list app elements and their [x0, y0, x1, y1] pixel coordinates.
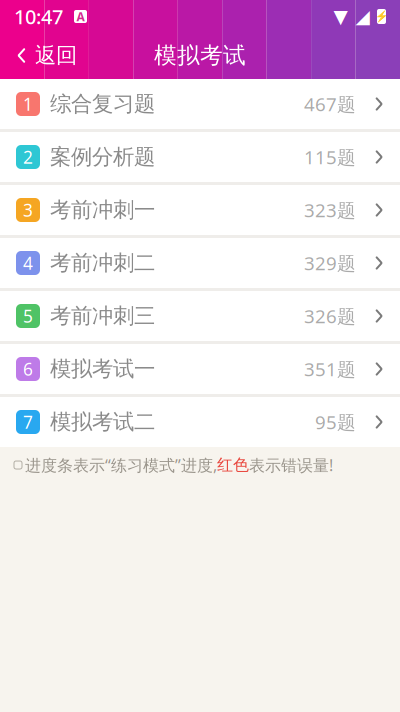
staticText: 模拟考试二	[50, 409, 155, 435]
staticText: 329题	[304, 251, 356, 275]
staticText: 115题	[304, 145, 356, 169]
staticText: 2	[23, 145, 33, 168]
button[interactable]: 6	[0, 344, 400, 394]
staticText: 表示错误量!	[249, 454, 333, 476]
staticText: 95题	[315, 410, 356, 434]
button[interactable]: 4	[0, 238, 400, 288]
button[interactable]: 3	[0, 185, 400, 235]
staticText: 返回	[35, 42, 77, 69]
staticText: 案例分析题	[50, 144, 155, 170]
button[interactable]: 1	[0, 79, 400, 129]
staticText: 3	[23, 198, 33, 221]
staticText: 1	[23, 92, 33, 115]
staticText: 10:47	[14, 3, 63, 30]
staticText: 综合复习题	[50, 91, 155, 117]
staticText: 模拟考试一	[50, 356, 155, 382]
staticText: ▼	[333, 6, 347, 27]
staticText: 考前冲刺二	[50, 250, 155, 276]
staticText: A	[76, 8, 84, 24]
staticText: 6	[23, 357, 33, 380]
staticText: ⚡	[375, 10, 388, 23]
staticText: 467题	[304, 92, 356, 116]
staticText: 进度条表示“练习模式”进度,	[25, 454, 217, 476]
button[interactable]: 7	[0, 397, 400, 447]
staticText: 红色	[217, 455, 249, 475]
staticText: 考前冲刺一	[50, 197, 155, 223]
staticText: 323题	[304, 198, 356, 222]
staticText: ◢	[355, 6, 369, 27]
button[interactable]: 返回	[0, 32, 93, 78]
staticText: 考前冲刺三	[50, 303, 155, 329]
button[interactable]: 5	[0, 291, 400, 341]
button[interactable]: 2	[0, 132, 400, 182]
staticText: 模拟考试	[154, 42, 246, 69]
staticText: 4	[23, 251, 33, 274]
staticText: 7	[23, 410, 33, 433]
staticText: 326题	[304, 304, 356, 328]
staticText: 5	[23, 304, 33, 327]
staticText: 351题	[304, 357, 356, 381]
